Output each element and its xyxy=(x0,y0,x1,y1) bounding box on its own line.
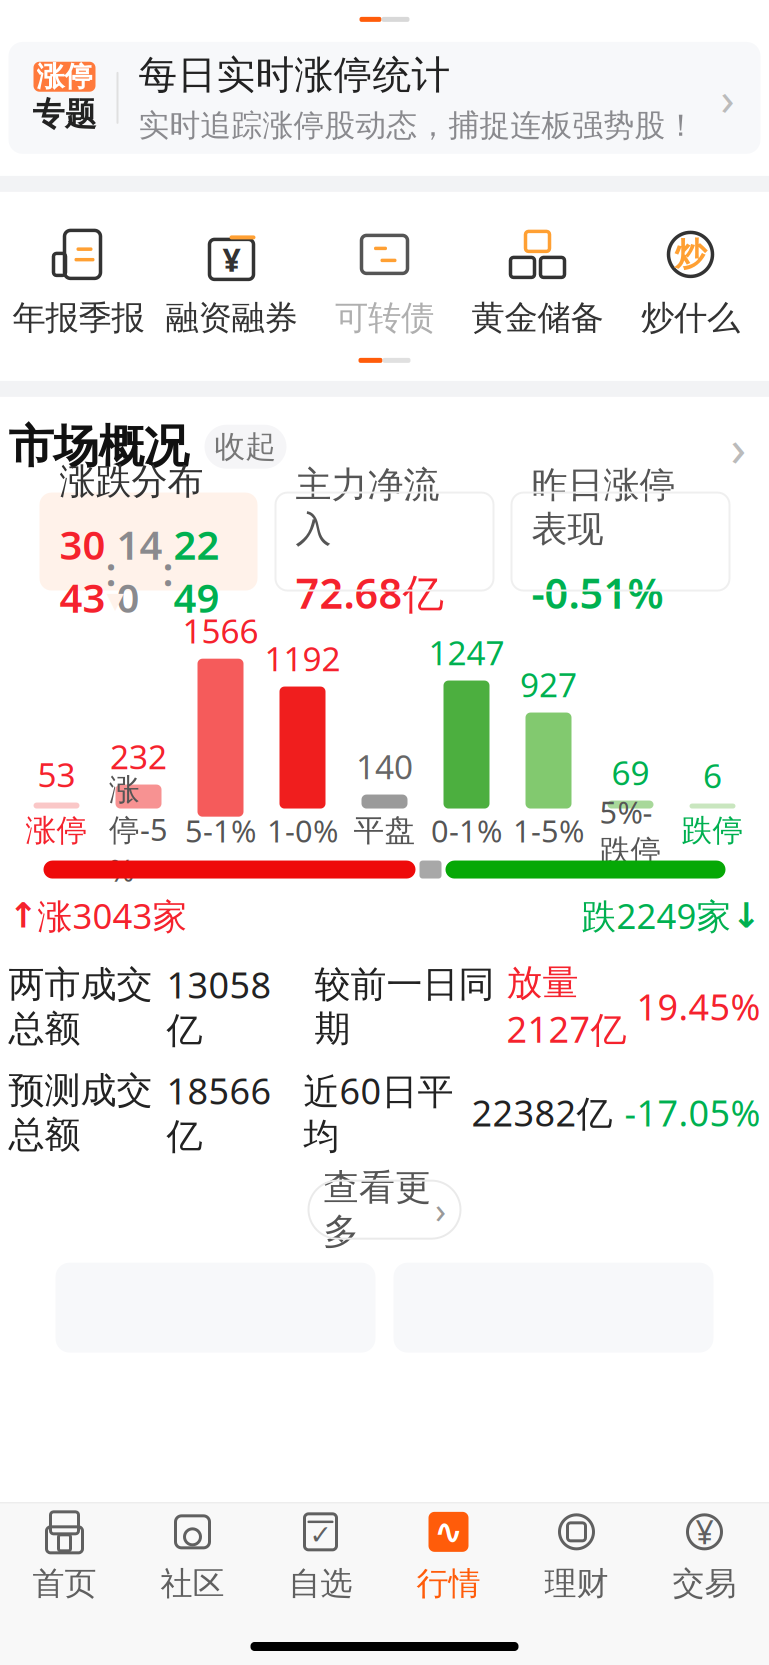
staticText: ∿ xyxy=(434,1512,463,1551)
staticText: 22382亿 xyxy=(471,1089,612,1136)
button[interactable]: 查看更多 xyxy=(308,1181,460,1239)
staticText: 1192 xyxy=(264,636,340,681)
staticText: › xyxy=(720,68,734,128)
staticText: 13058亿 xyxy=(166,961,271,1053)
staticText: 5%-跌停 xyxy=(599,791,661,870)
staticText: 0-1% xyxy=(431,810,502,851)
button[interactable]: 涨停 xyxy=(8,42,760,154)
staticText: 140 xyxy=(356,744,413,789)
staticText: 社区 xyxy=(160,1564,224,1603)
staticText: 专题 xyxy=(32,95,96,134)
staticText: 放量2127亿 xyxy=(506,961,626,1053)
staticText: 行情 xyxy=(416,1564,480,1603)
staticText: 选股 xyxy=(322,75,392,117)
staticText: 两市成交总额 xyxy=(8,962,152,1051)
staticText: 13:10 xyxy=(36,0,139,52)
staticText: 平盘 xyxy=(353,812,415,849)
staticText: 18566亿 xyxy=(166,1067,271,1159)
staticText: 交易 xyxy=(672,1564,736,1603)
staticText: 涨停 xyxy=(25,812,87,849)
staticText: 涨停-5% xyxy=(109,771,168,890)
staticText: 3043 xyxy=(59,518,105,624)
staticText: 实时追踪涨停股动态，捕捉连板强势股！ xyxy=(138,107,696,144)
staticText: 融资融券 xyxy=(165,297,297,338)
staticText: 自选 xyxy=(288,1564,352,1603)
staticText: 黄金储备 xyxy=(471,297,603,338)
staticText: 首页 xyxy=(32,1564,96,1603)
button[interactable]: 搜索 xyxy=(693,72,741,120)
staticText: › xyxy=(730,413,746,480)
button[interactable]: 社区 xyxy=(128,1503,256,1607)
staticText: : xyxy=(162,544,173,597)
staticText: 涨跌分布 xyxy=(59,459,203,503)
staticText: 140 xyxy=(116,518,162,624)
staticText: ¥ xyxy=(222,238,240,281)
staticText: -17.05% xyxy=(624,1089,760,1136)
staticText: 理财 xyxy=(544,1564,608,1603)
staticText: ✓ xyxy=(309,1520,331,1550)
button[interactable]: 更多市场概况 xyxy=(716,425,760,469)
staticText: 跌2249家 xyxy=(581,893,731,939)
button[interactable]: ¥ xyxy=(640,1503,768,1607)
button[interactable]: 选股 xyxy=(312,69,402,123)
staticText: -0.51% xyxy=(531,565,663,620)
staticText: 查看更多 xyxy=(323,1165,431,1254)
staticText: 19.45% xyxy=(636,983,760,1030)
staticText: 主力净流入 xyxy=(295,463,439,551)
staticText: 跌停 xyxy=(681,812,743,849)
staticText: 6 xyxy=(703,753,722,798)
staticText: 东方 xyxy=(30,71,70,95)
button[interactable]: ✓ xyxy=(256,1503,384,1607)
button[interactable]: 涨跌分布 xyxy=(39,493,257,591)
button[interactable]: 盯盘 xyxy=(210,69,300,123)
button[interactable]: 黄金储备 xyxy=(461,218,614,346)
button[interactable]: 年报季报 xyxy=(2,218,155,346)
staticText: 927 xyxy=(520,662,577,707)
staticText: 72.68亿 xyxy=(295,565,443,620)
staticText: 可转债 xyxy=(335,297,434,338)
staticText: 预测成交总额 xyxy=(8,1068,152,1157)
staticText: 61 xyxy=(687,0,701,60)
staticText: 市场概况 xyxy=(8,419,188,475)
staticText: ▾ xyxy=(106,580,123,619)
staticText: ↑ xyxy=(8,896,37,935)
staticText: ↓ xyxy=(731,896,760,935)
staticText: 收起 xyxy=(214,428,276,466)
staticText: 行情 xyxy=(84,62,196,130)
staticText: 2249 xyxy=(173,518,219,624)
staticText: 1-0% xyxy=(267,810,338,851)
staticText: 盯盘 xyxy=(220,75,290,117)
staticText: : xyxy=(105,544,116,597)
staticText: 较前一日同期 xyxy=(314,962,494,1051)
staticText: ¥ xyxy=(695,1511,713,1553)
button[interactable]: 分享 xyxy=(627,72,675,120)
staticText: 炒 xyxy=(674,235,706,274)
button[interactable]: 理财 xyxy=(512,1503,640,1607)
staticText: 每日实时涨停统计 xyxy=(138,51,450,99)
staticText: 232 xyxy=(110,734,167,779)
button[interactable]: 首页 xyxy=(0,1503,128,1607)
staticText: 1566 xyxy=(182,608,258,653)
staticText: 财富 xyxy=(30,96,70,121)
button[interactable]: 炒 xyxy=(614,218,767,346)
button[interactable]: ¥ xyxy=(155,218,308,346)
button[interactable]: 可转债 xyxy=(308,218,461,346)
staticText: 炒什么 xyxy=(641,297,740,338)
staticText: 5-1% xyxy=(185,810,256,851)
button[interactable]: 筛选设置 xyxy=(561,72,609,120)
button[interactable]: ∿ xyxy=(384,1503,512,1607)
button[interactable]: 主力净流入 xyxy=(275,493,493,591)
staticText: 1247 xyxy=(428,630,504,675)
staticText: 年报季报 xyxy=(12,297,144,338)
staticText: 53 xyxy=(37,752,75,797)
staticText: 涨3043家 xyxy=(37,893,187,939)
staticText: 昨日涨停表现 xyxy=(531,463,675,551)
staticText: › xyxy=(435,1186,446,1233)
staticText: 1-5% xyxy=(513,810,584,851)
staticText: 近60日平均 xyxy=(303,1067,453,1159)
staticText: 69 xyxy=(611,750,649,795)
staticText: 涨停 xyxy=(36,59,92,94)
button[interactable]: 昨日涨停表现 xyxy=(511,493,729,591)
button[interactable]: 收起 xyxy=(204,425,286,469)
